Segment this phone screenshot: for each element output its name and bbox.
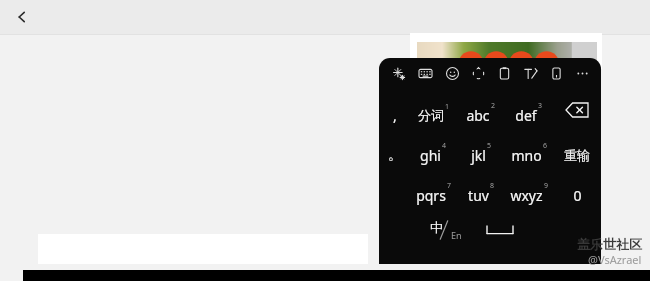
button[interactable]: Backspace — [553, 90, 601, 130]
button[interactable] — [564, 210, 601, 250]
button[interactable]: Space — [472, 210, 527, 250]
staticText: mno — [511, 146, 542, 165]
button[interactable]: tuv — [457, 170, 505, 210]
staticText: 1 — [445, 102, 450, 112]
button[interactable]: abc — [457, 90, 505, 130]
staticText: 4 — [442, 141, 447, 151]
staticText: pqrs — [416, 186, 446, 205]
staticText: tuv — [468, 186, 489, 205]
button[interactable]: Handwriting — [517, 58, 543, 88]
staticText: , — [393, 106, 397, 125]
button[interactable]: wxyz — [505, 170, 553, 210]
other: Switch Chinese English — [417, 210, 472, 250]
staticText: 。 — [388, 146, 402, 164]
other: Backspace — [553, 90, 601, 130]
staticText: 3 — [538, 101, 543, 111]
staticText: ghi — [420, 146, 441, 165]
button[interactable]: Clipboard — [491, 58, 517, 88]
button[interactable]: , — [379, 90, 410, 130]
staticText: 7 — [447, 181, 452, 191]
button[interactable]: Back — [0, 0, 44, 34]
staticText: 中 — [430, 219, 443, 235]
button[interactable]: 分词 — [410, 90, 457, 130]
button[interactable]: mno — [505, 130, 553, 170]
staticText: En — [451, 229, 462, 241]
staticText: @VsAzrael — [588, 252, 642, 267]
staticText: jkl — [471, 146, 486, 165]
button[interactable]: ghi — [410, 130, 457, 170]
button[interactable]: jkl — [457, 130, 505, 170]
button[interactable]: Emoji — [439, 58, 465, 88]
staticText: 2 — [491, 101, 496, 111]
staticText: wxyz — [510, 186, 543, 205]
button[interactable]: Save — [543, 58, 569, 88]
button[interactable]: pqrs — [410, 170, 457, 210]
staticText: def — [515, 106, 537, 125]
button[interactable]: Keyboard layout — [412, 58, 439, 88]
staticText: 8 — [490, 181, 495, 191]
other: Space — [472, 210, 527, 250]
button[interactable]: def — [505, 90, 553, 130]
staticText: abc — [466, 106, 490, 125]
button[interactable]: Switch Chinese English — [417, 210, 472, 250]
staticText: 0 — [573, 186, 582, 205]
staticText: 分词 — [418, 107, 444, 123]
button[interactable]: 。 — [379, 130, 410, 170]
staticText: 5 — [487, 141, 492, 151]
staticText: 重输 — [564, 147, 590, 163]
button[interactable]: Move cursor — [465, 58, 491, 88]
staticText: 盖乐世社区 — [577, 236, 642, 252]
staticText: 6 — [543, 141, 548, 151]
staticText: 9 — [544, 181, 549, 191]
button[interactable]: 重输 — [553, 130, 601, 170]
button[interactable]: More options — [569, 58, 595, 88]
button[interactable]: 0 — [553, 170, 601, 210]
button[interactable]: AI assist — [385, 58, 412, 88]
